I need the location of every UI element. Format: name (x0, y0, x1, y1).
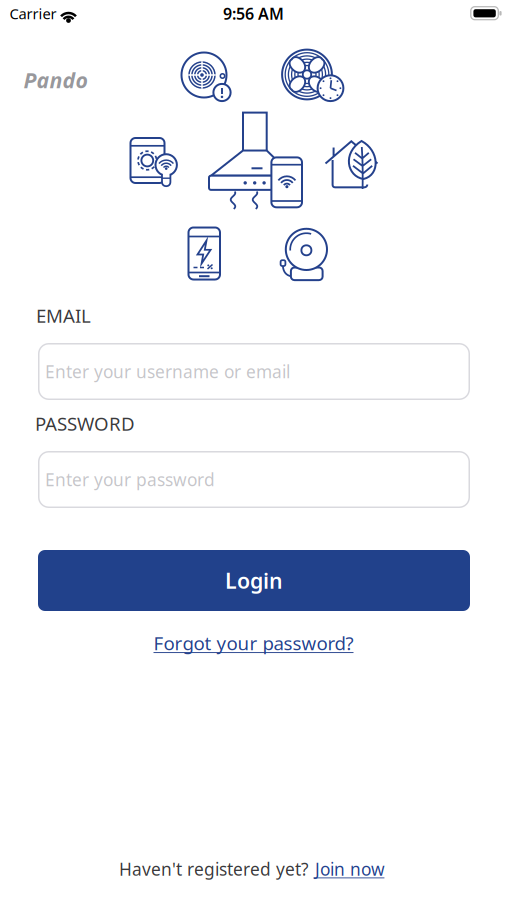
staticText: 9:56 AM (223, 3, 284, 24)
button[interactable]: Join now (315, 857, 385, 880)
staticText: Login (225, 566, 283, 595)
staticText: Haven't registered yet? (119, 857, 309, 880)
staticText: EMAIL (36, 303, 91, 328)
button[interactable]: Forgot your password? (153, 631, 353, 655)
staticText: Enter your username or email (45, 360, 290, 383)
staticText: Enter your password (45, 468, 215, 491)
staticText: Carrier (9, 4, 56, 23)
button[interactable]: Login (38, 550, 470, 611)
staticText: Join now (315, 857, 385, 880)
button[interactable]: Password (38, 451, 470, 508)
staticText: Pando (23, 66, 87, 94)
button[interactable]: Email (38, 343, 470, 400)
staticText: PASSWORD (35, 411, 135, 436)
staticText: Forgot your password? (153, 631, 353, 655)
